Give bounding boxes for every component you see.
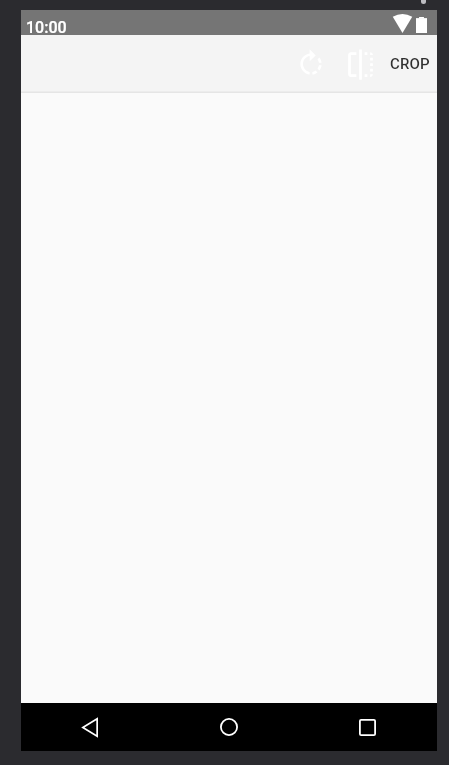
button[interactable]: Flip bbox=[334, 35, 382, 93]
button[interactable]: Rotate bbox=[285, 35, 333, 93]
button[interactable]: Home bbox=[159, 703, 298, 751]
staticText: 10:00 bbox=[26, 18, 67, 37]
button[interactable]: Recents bbox=[298, 703, 437, 751]
button[interactable]: Back bbox=[21, 703, 159, 751]
button[interactable]: CROP bbox=[382, 35, 437, 93]
staticText: CROP bbox=[390, 55, 430, 73]
